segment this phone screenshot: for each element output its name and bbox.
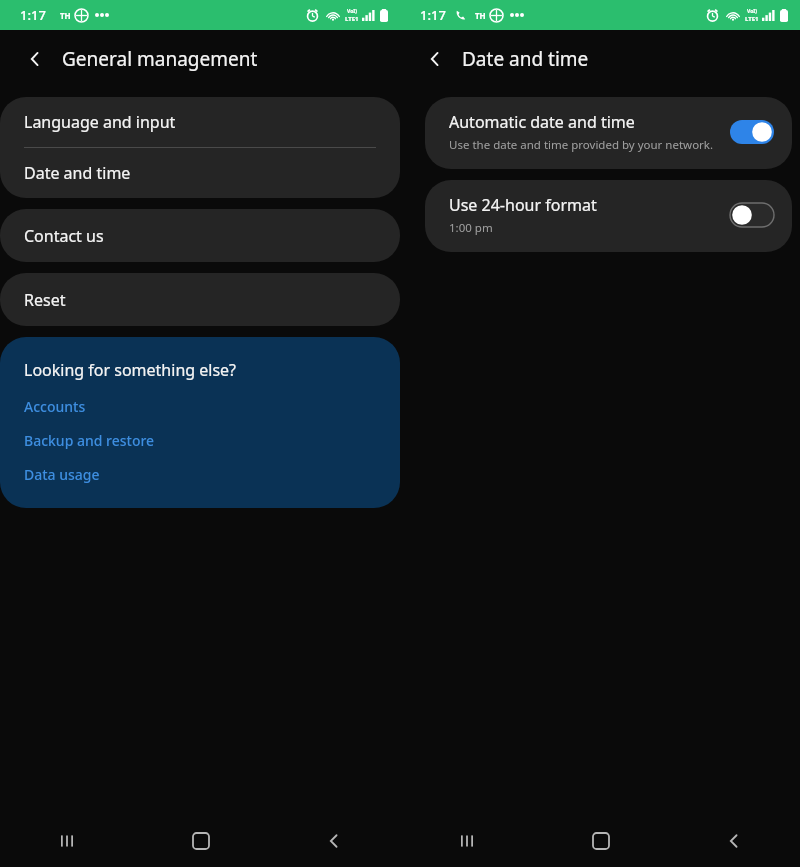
staticText: 1:17 bbox=[420, 6, 446, 24]
staticText: Data usage bbox=[24, 465, 100, 484]
button[interactable]: Toggle off bbox=[730, 203, 774, 227]
button[interactable]: Accounts bbox=[24, 397, 86, 416]
button[interactable]: Back bbox=[267, 815, 400, 867]
staticText: Looking for something else? bbox=[24, 359, 237, 381]
staticText: LTE1 bbox=[745, 15, 759, 23]
staticText: Automatic date and time bbox=[449, 111, 635, 133]
staticText: Use 24-hour format bbox=[449, 194, 597, 216]
button[interactable]: Reset bbox=[0, 273, 400, 326]
button[interactable]: Backup and restore bbox=[24, 431, 155, 450]
staticText: Accounts bbox=[24, 397, 86, 416]
button[interactable]: Back bbox=[667, 815, 800, 867]
staticText: Backup and restore bbox=[24, 431, 155, 450]
staticText: TH bbox=[475, 10, 486, 21]
button[interactable]: Automatic date and time bbox=[425, 97, 792, 169]
staticText: TH bbox=[60, 10, 71, 21]
staticText: 1:17 bbox=[20, 6, 46, 24]
staticText: Contact us bbox=[24, 225, 104, 247]
staticText: VoI) bbox=[347, 8, 357, 15]
button[interactable]: Back bbox=[418, 42, 452, 76]
staticText: General management bbox=[62, 46, 258, 72]
button[interactable]: Home bbox=[134, 815, 267, 867]
staticText: Language and input bbox=[24, 111, 176, 133]
staticText: VoI) bbox=[747, 8, 757, 15]
button[interactable]: Back bbox=[18, 42, 52, 76]
button[interactable]: Data usage bbox=[24, 465, 100, 484]
button[interactable]: Recent apps bbox=[0, 815, 134, 867]
staticText: Reset bbox=[24, 289, 66, 311]
staticText: LTE1 bbox=[345, 15, 359, 23]
staticText: Date and time bbox=[462, 46, 589, 72]
button[interactable]: Date and time bbox=[0, 148, 400, 198]
button[interactable]: Toggle on bbox=[730, 120, 774, 144]
staticText: Use the date and time provided by your n… bbox=[449, 137, 714, 153]
button[interactable]: Language and input bbox=[0, 97, 400, 147]
button[interactable]: Use 24-hour format bbox=[425, 180, 792, 252]
button[interactable]: Recent apps bbox=[400, 815, 534, 867]
staticText: 1:00 pm bbox=[449, 220, 493, 236]
button[interactable]: Home bbox=[534, 815, 667, 867]
button[interactable]: Contact us bbox=[0, 209, 400, 262]
staticText: Date and time bbox=[24, 162, 131, 184]
